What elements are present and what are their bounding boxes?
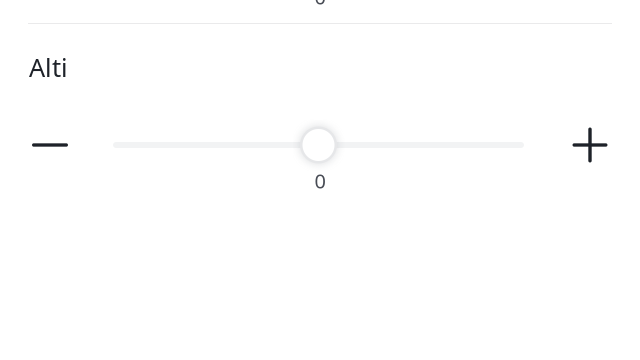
button[interactable]: Increase Alti [554,121,626,169]
staticText: 0 [314,167,325,194]
staticText: Alti [29,50,68,84]
button[interactable]: 0 [113,125,524,165]
staticText: 0 [314,0,325,10]
button[interactable]: Decrease Alti [14,121,86,169]
